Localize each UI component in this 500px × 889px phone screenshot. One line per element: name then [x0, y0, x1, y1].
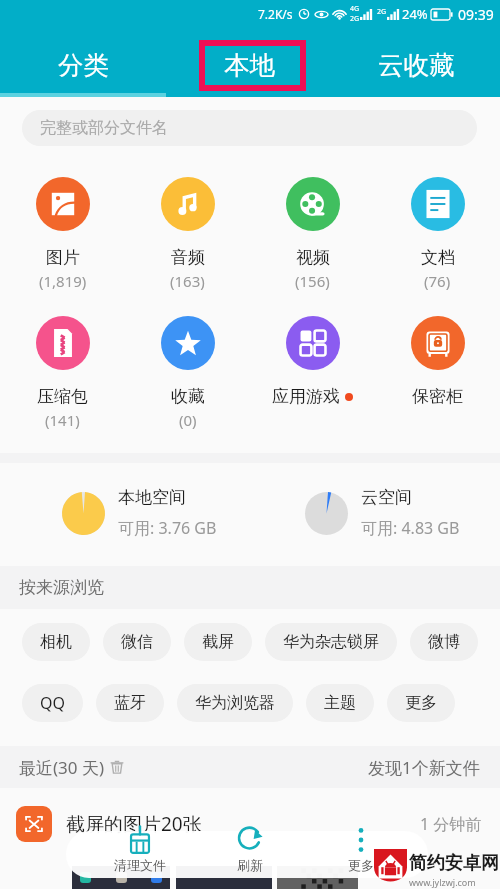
staticText: 刷新 — [237, 857, 263, 873]
staticText: (1,819) — [39, 271, 87, 291]
staticText: 可用: 3.76 GB — [118, 517, 217, 539]
button[interactable]: 微博 — [410, 623, 478, 661]
staticText: (141) — [45, 410, 80, 430]
staticText: 发现1个新文件 — [368, 756, 480, 779]
button[interactable]: 更多 — [325, 826, 397, 874]
staticText: 图片 — [46, 247, 80, 268]
button[interactable]: 清理文件 — [104, 826, 176, 874]
button[interactable]: 截屏 — [184, 623, 252, 661]
button[interactable]: QQ — [22, 684, 83, 722]
staticText: 微信 — [121, 632, 153, 652]
staticText: 截屏的图片20张 — [66, 811, 202, 837]
button[interactable]: 蓝牙 — [96, 684, 164, 722]
staticText: 最近(30 天) — [19, 756, 105, 779]
button[interactable]: 视频 — [250, 177, 375, 291]
staticText: www.jylzwj.com — [409, 876, 476, 888]
staticText: 更多 — [348, 857, 374, 873]
staticText: (156) — [295, 271, 330, 291]
button[interactable]: 华为杂志锁屏 — [265, 623, 397, 661]
button[interactable]: 截屏的图片20张 — [0, 788, 500, 860]
button[interactable]: 本地 — [166, 28, 333, 97]
staticText: (0) — [179, 410, 197, 430]
button[interactable]: 保密柜 — [375, 316, 500, 407]
button[interactable]: 云空间 — [305, 485, 460, 541]
staticText: 微博 — [428, 632, 460, 652]
staticText: 24% — [402, 5, 428, 23]
staticText: 清理文件 — [114, 857, 166, 873]
staticText: QQ — [40, 692, 65, 714]
button[interactable]: 音频 — [125, 177, 250, 291]
staticText: 相机 — [40, 632, 72, 652]
staticText: 视频 — [296, 247, 330, 268]
button[interactable]: 完整或部分文件名 — [22, 110, 477, 146]
button[interactable]: 微信 — [103, 623, 171, 661]
button[interactable]: 相机 — [22, 623, 90, 661]
staticText: 完整或部分文件名 — [40, 118, 168, 138]
staticText: 主题 — [324, 693, 356, 713]
staticText: 本地 — [224, 49, 275, 81]
staticText: 2G — [350, 14, 360, 24]
staticText: 分类 — [58, 49, 109, 81]
staticText: 2G — [377, 7, 387, 17]
staticText: 音频 — [171, 247, 205, 268]
staticText: 按来源浏览 — [19, 577, 104, 598]
button[interactable]: 华为浏览器 — [177, 684, 293, 722]
button[interactable]: 本地空间 — [62, 485, 217, 541]
button[interactable]: 主题 — [306, 684, 374, 722]
button[interactable]: 应用游戏 — [250, 316, 375, 407]
button[interactable]: 图片 — [0, 177, 125, 291]
button[interactable]: 收藏 — [125, 316, 250, 430]
staticText: 文档 — [421, 247, 455, 268]
button[interactable]: 压缩包 — [0, 316, 125, 430]
staticText: 09:39 — [458, 5, 494, 24]
staticText: 压缩包 — [37, 386, 88, 407]
button[interactable]: 分类 — [0, 28, 166, 97]
staticText: 1 分钟前 — [420, 813, 482, 835]
button[interactable]: 云收藏 — [333, 28, 500, 97]
staticText: 保密柜 — [412, 386, 463, 407]
staticText: 本地空间 — [118, 487, 186, 508]
staticText: 截屏 — [202, 632, 234, 652]
staticText: 收藏 — [171, 386, 205, 407]
staticText: 可用: 4.83 GB — [361, 517, 460, 539]
button[interactable]: 清除 — [109, 759, 125, 775]
button[interactable]: 更多 — [387, 684, 455, 722]
staticText: 7.2K/s — [258, 6, 293, 22]
staticText: 云空间 — [361, 487, 412, 508]
button[interactable]: 刷新 — [214, 826, 286, 874]
staticText: (76) — [424, 271, 451, 291]
staticText: 云收藏 — [378, 49, 455, 81]
staticText: (163) — [170, 271, 205, 291]
staticText: 简约安卓网 — [409, 852, 499, 875]
staticText: 4G — [350, 4, 360, 14]
staticText: 更多 — [405, 693, 437, 713]
staticText: 应用游戏 — [272, 386, 340, 407]
staticText: 蓝牙 — [114, 693, 146, 713]
staticText: 华为浏览器 — [195, 693, 275, 713]
button[interactable]: 文档 — [375, 177, 500, 291]
staticText: 华为杂志锁屏 — [283, 632, 379, 652]
